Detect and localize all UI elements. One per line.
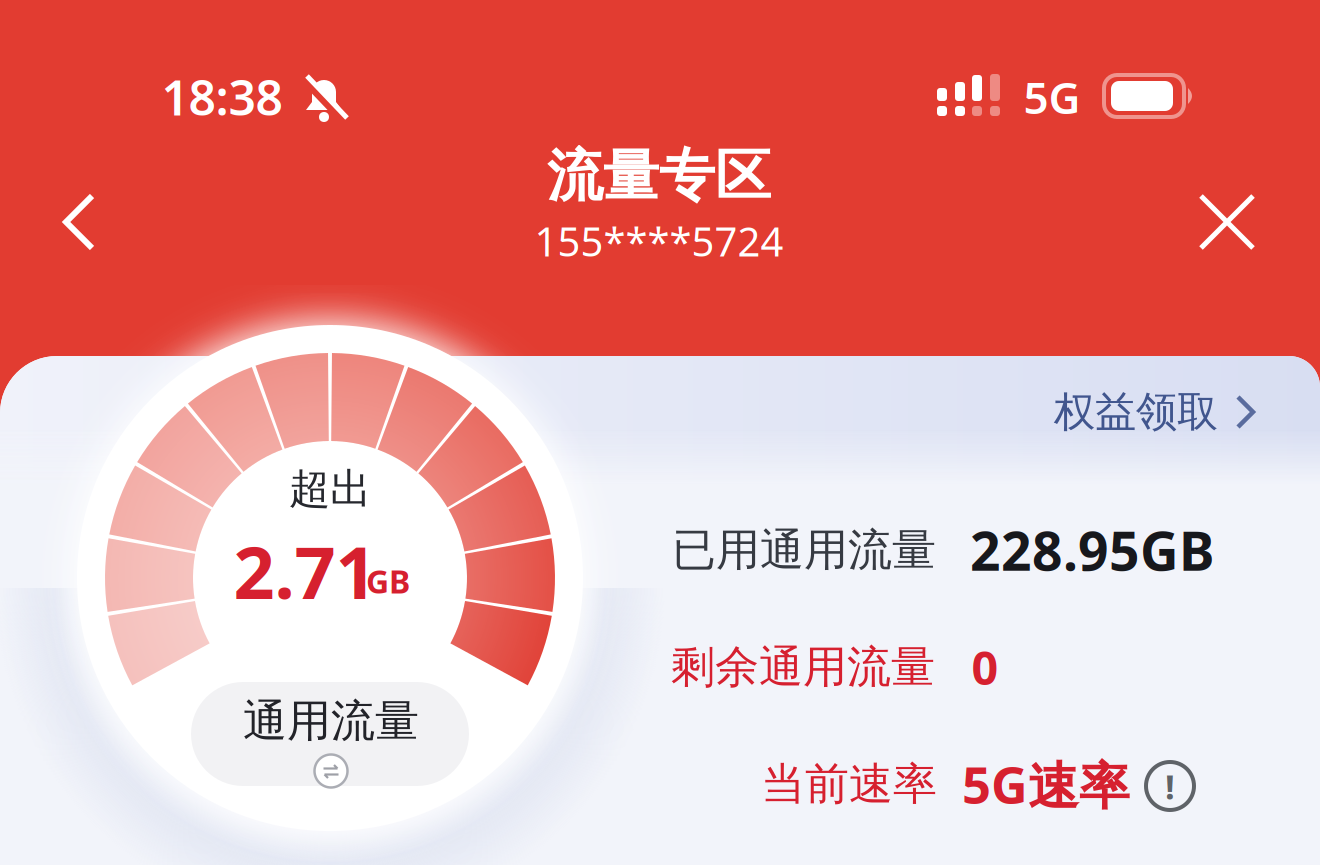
staticText: 18:38 — [161, 65, 282, 129]
staticText: 流量专区 — [547, 142, 771, 210]
staticText: GB — [366, 560, 410, 602]
staticText: 5G速率 — [962, 750, 1130, 818]
button[interactable]: 切换流量类型 — [191, 682, 469, 786]
staticText: 当前速率 — [761, 757, 937, 811]
staticText: 0 — [971, 636, 998, 698]
staticText: 通用流量 — [243, 694, 419, 748]
staticText: 5G — [1023, 68, 1080, 126]
button[interactable]: 速率说明 — [1146, 762, 1194, 810]
staticText: ! — [1165, 763, 1175, 809]
button[interactable]: Close — [1187, 182, 1267, 262]
staticText: 已用通用流量 — [672, 523, 936, 577]
staticText: 228.95GB — [970, 515, 1214, 585]
button[interactable]: Back — [48, 180, 110, 264]
staticText: 剩余通用流量 — [671, 640, 935, 694]
button[interactable]: 权益领取 — [1044, 377, 1266, 447]
staticText: 155****5724 — [534, 214, 783, 267]
staticText: 超出 — [289, 464, 371, 514]
staticText: 权益领取 — [1054, 387, 1218, 437]
staticText: 2.71 — [233, 523, 376, 619]
